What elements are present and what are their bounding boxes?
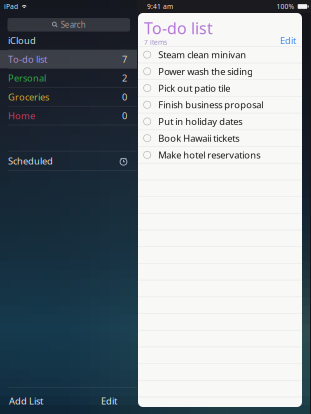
staticText: Steam clean minivan <box>158 48 246 61</box>
staticText: 100% <box>276 2 294 11</box>
staticText: 9:41 am <box>147 2 173 11</box>
button[interactable]: Scheduled <box>0 151 137 170</box>
staticText: Home <box>8 109 35 122</box>
staticText: To-do list <box>8 53 47 65</box>
staticText: Edit <box>101 395 117 407</box>
staticText: Search <box>61 19 86 30</box>
staticText: 7 <box>122 53 127 65</box>
staticText: Scheduled <box>8 155 53 167</box>
button[interactable]: Make hotel reservations <box>138 147 302 163</box>
button[interactable]: Home <box>0 106 137 125</box>
staticText: Pick out patio tile <box>158 82 230 94</box>
staticText: Finish business proposal <box>158 99 263 111</box>
staticText: 0 <box>122 91 127 103</box>
staticText: 2 <box>122 72 127 84</box>
button[interactable]: Search <box>7 18 130 31</box>
button[interactable]: Steam clean minivan <box>138 47 302 63</box>
button[interactable]: Pick out patio tile <box>138 80 302 97</box>
button[interactable]: To-do list <box>0 50 137 68</box>
staticText: Personal <box>8 72 46 84</box>
button[interactable]: Add List <box>9 391 43 411</box>
staticText: 0 <box>122 109 127 122</box>
staticText: Power wash the siding <box>158 65 253 78</box>
staticText: Put in holiday dates <box>158 115 242 128</box>
staticText: iCloud <box>8 34 36 47</box>
button[interactable]: Power wash the siding <box>138 63 302 80</box>
staticText: To-do list <box>144 17 213 39</box>
staticText: Edit <box>280 34 296 47</box>
button[interactable]: Put in holiday dates <box>138 113 302 130</box>
button[interactable]: Finish business proposal <box>138 97 302 113</box>
staticText: Groceries <box>8 91 49 103</box>
staticText: iPad <box>4 2 18 11</box>
button[interactable]: Book Hawaii tickets <box>138 130 302 147</box>
staticText: Book Hawaii tickets <box>158 132 239 144</box>
button[interactable]: Groceries <box>0 88 137 106</box>
button[interactable]: Edit <box>101 391 117 411</box>
staticText: 7 items <box>144 38 167 47</box>
staticText: Add List <box>9 395 43 407</box>
staticText: Make hotel reservations <box>158 149 260 161</box>
button[interactable]: Edit <box>280 34 296 47</box>
button[interactable]: Personal <box>0 69 137 87</box>
